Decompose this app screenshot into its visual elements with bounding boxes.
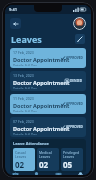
staticText: 13 Feb, 2023 (13, 73, 34, 78)
staticText: Privileged Leaves (63, 150, 80, 159)
staticText: 02 (39, 159, 49, 169)
staticText: 07 Feb, 2023 (13, 119, 34, 124)
button[interactable]: Back (10, 18, 21, 29)
staticText: Leaves (11, 33, 42, 45)
staticText: Medical Leaves (39, 150, 52, 159)
staticText: 17 Feb, 2023 (13, 50, 34, 55)
staticText: 11 Feb, 2023 (13, 96, 34, 101)
staticText: APPROVED (66, 56, 83, 60)
button[interactable]: Alerts (26, 173, 47, 175)
staticText: Doctor Appointment (13, 79, 70, 86)
staticText: 05 (63, 159, 73, 169)
staticText: DENIED (70, 79, 83, 83)
button[interactable]: Apply for leave (75, 34, 85, 44)
button[interactable]: Casual Leaves (13, 148, 35, 171)
staticText: APPROVED (66, 102, 83, 106)
staticText: 02 (15, 159, 25, 169)
staticText: 9:41 (9, 7, 17, 12)
button[interactable]: Privileged Leaves (61, 148, 83, 171)
button[interactable]: Diary (47, 173, 69, 175)
button[interactable]: Profile (69, 173, 91, 175)
button[interactable]: 13 Feb, 2023 (10, 71, 86, 91)
staticText: APPROVED (66, 125, 83, 129)
staticText: Casual Leaves (15, 150, 27, 159)
staticText: Doctor Appointment (13, 102, 70, 109)
button[interactable]: 17 Feb, 2023 (10, 48, 86, 68)
button[interactable]: 11 Feb, 2023 (10, 94, 86, 114)
staticText: Details: Full Day (13, 64, 37, 66)
staticText: Details: Full Day (13, 110, 37, 112)
button[interactable]: Medical Leaves (37, 148, 59, 171)
button[interactable]: 07 Feb, 2023 (10, 117, 86, 137)
staticText: Details: Full Day (13, 133, 37, 135)
staticText: Leave Attendance (13, 141, 49, 146)
button[interactable]: Profile (73, 17, 86, 30)
button[interactable]: Home (5, 173, 26, 175)
staticText: Doctor Appointment (13, 125, 70, 132)
staticText: Doctor Appointment (13, 56, 70, 63)
staticText: Details: Full Day (13, 87, 37, 89)
